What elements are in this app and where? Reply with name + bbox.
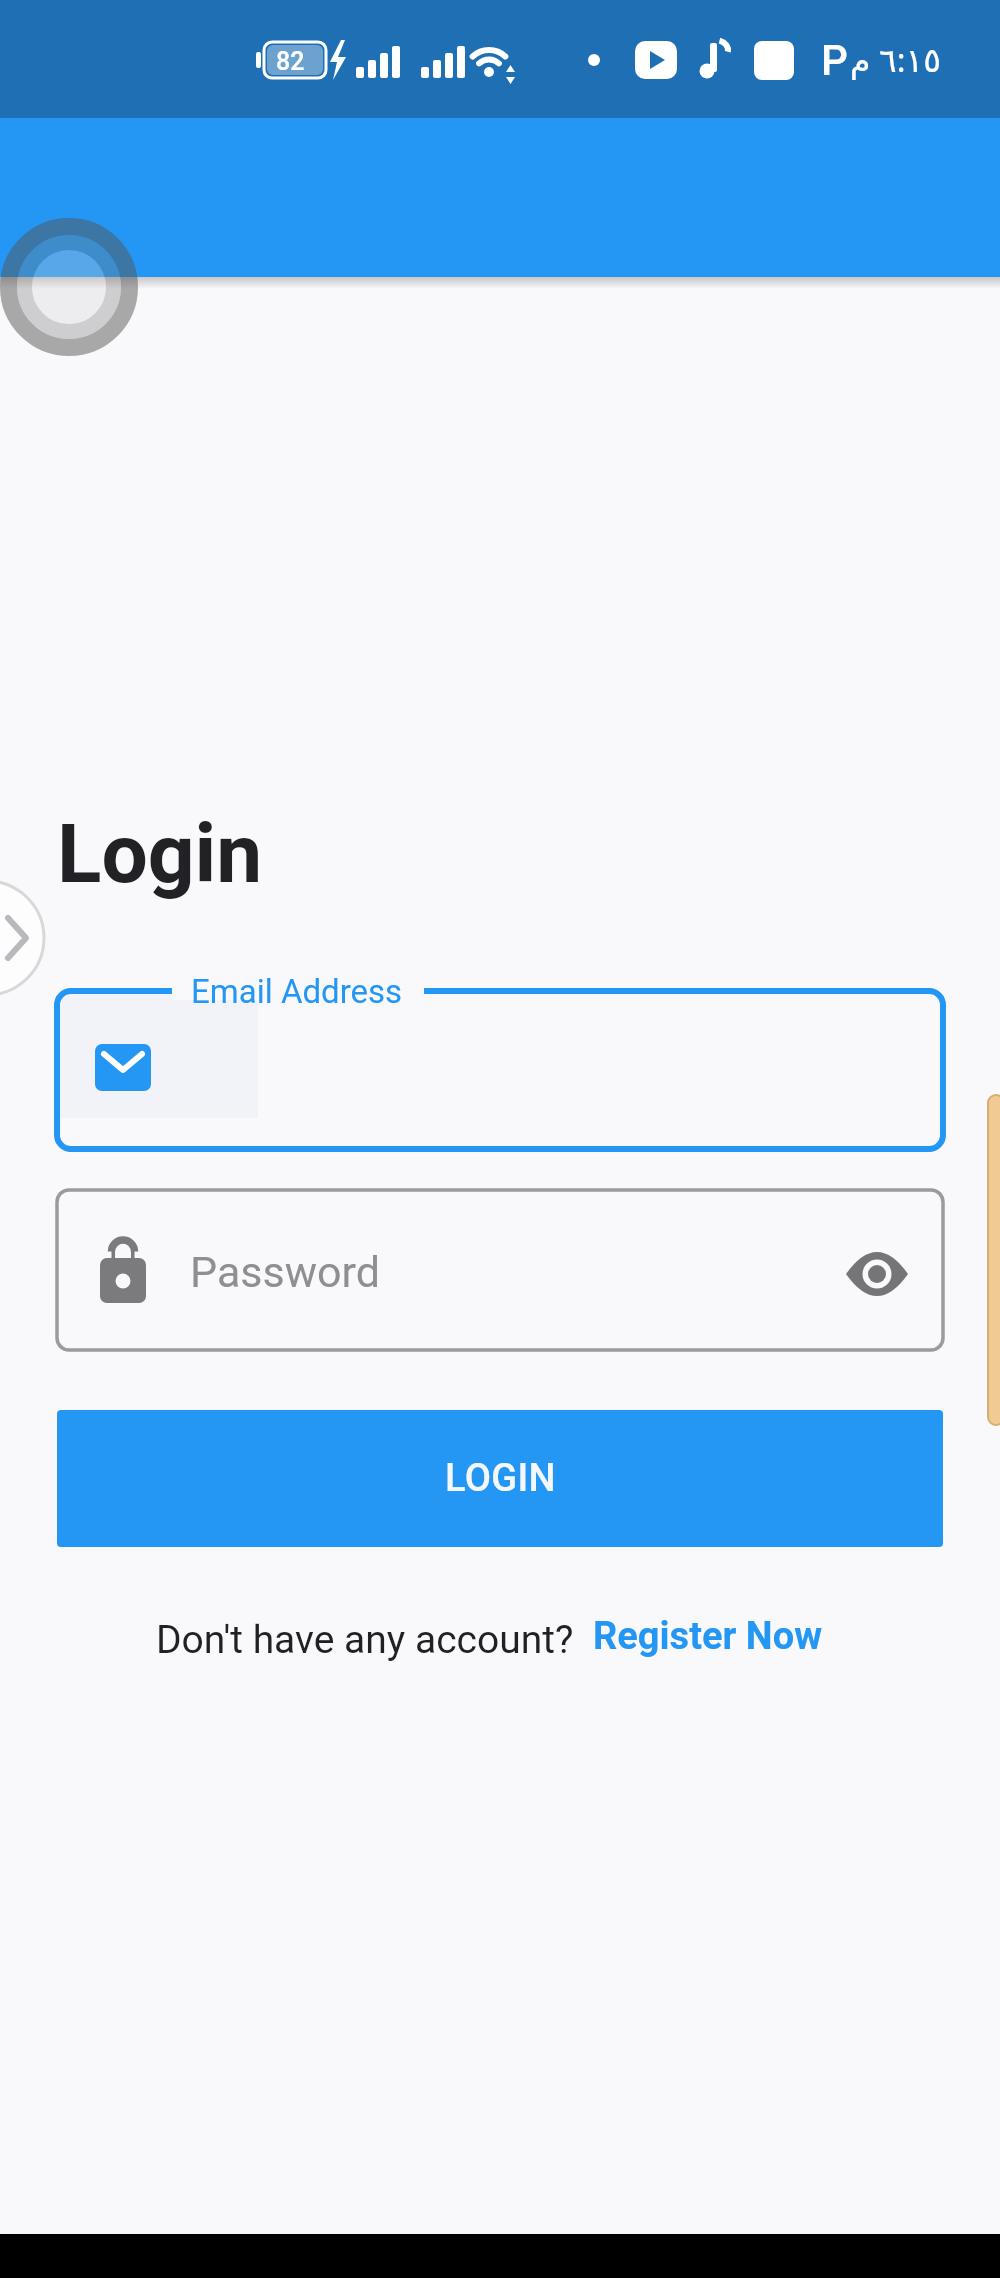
staticText: LOGIN: [445, 1456, 556, 1501]
button[interactable]: [830, 1238, 926, 1310]
staticText: Login: [57, 806, 263, 902]
staticText: Don't have any account?: [156, 1617, 574, 1663]
staticText: 82: [276, 47, 305, 76]
button[interactable]: Register Now: [585, 1605, 830, 1667]
button[interactable]: [57, 988, 943, 1149]
button[interactable]: [57, 1190, 943, 1350]
staticText: Email Address: [191, 972, 403, 1011]
staticText: Register Now: [593, 1614, 823, 1659]
staticText: Password: [190, 1247, 380, 1297]
staticText: ٦:١٥ م: [850, 37, 942, 82]
button[interactable]: LOGIN: [57, 1410, 943, 1547]
staticText: P: [821, 36, 848, 85]
